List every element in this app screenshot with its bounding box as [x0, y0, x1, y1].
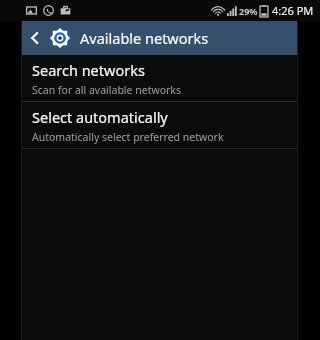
staticText: Select automatically: [32, 107, 168, 127]
button[interactable]: Search networks: [21, 55, 298, 101]
button[interactable]: Select automatically: [21, 102, 298, 148]
staticText: Scan for all available networks: [32, 83, 182, 97]
button[interactable]: Back: [21, 21, 49, 55]
staticText: Available networks: [80, 28, 209, 48]
staticText: 4:26 PM: [272, 3, 314, 18]
staticText: Search networks: [32, 60, 145, 80]
staticText: 29%: [239, 5, 258, 17]
staticText: Automatically select preferred network: [32, 130, 224, 144]
